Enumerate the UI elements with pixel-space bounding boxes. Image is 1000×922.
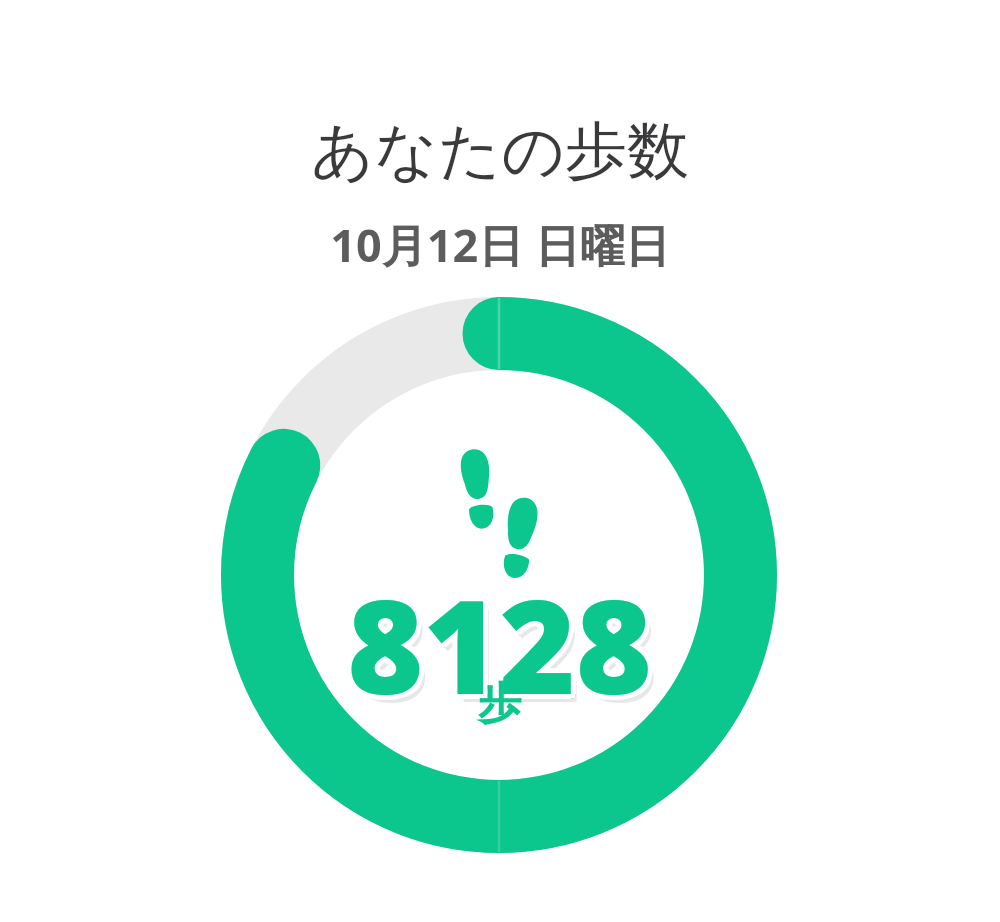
staticText: 8128	[347, 555, 652, 732]
staticText: 8128	[351, 551, 656, 728]
staticText: 歩	[478, 677, 521, 731]
staticText: 8128	[342, 555, 647, 732]
staticText: 8128	[343, 551, 648, 728]
staticText: 8128	[343, 559, 648, 736]
staticText: 8128	[347, 560, 652, 737]
staticText: 8128	[351, 559, 656, 736]
staticText: 8128	[352, 555, 657, 732]
staticText: 10月12日 日曜日	[330, 214, 670, 275]
staticText: 8128	[353, 563, 658, 740]
staticText: 8128	[350, 560, 655, 737]
button[interactable]: Daily step progress, 8128 steps	[221, 297, 777, 853]
staticText: 8128	[347, 550, 652, 727]
staticText: あなたの歩数	[311, 112, 689, 190]
